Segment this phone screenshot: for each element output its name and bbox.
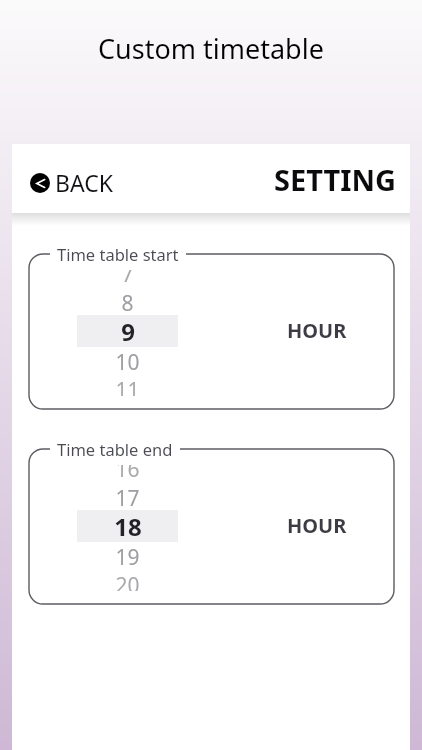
staticText: HOUR	[287, 512, 347, 539]
staticText: 10	[115, 348, 140, 376]
staticText: 20	[115, 571, 140, 591]
staticText: 19	[115, 543, 140, 571]
staticText: BACK	[55, 167, 113, 198]
button[interactable]	[77, 483, 178, 511]
button[interactable]	[77, 288, 178, 316]
staticText: Custom timetable	[98, 30, 324, 67]
staticText: Time table end	[57, 438, 173, 460]
staticText: 11	[115, 376, 140, 396]
staticText: HOUR	[287, 317, 347, 344]
staticText: 7	[121, 270, 134, 288]
other: Time table end	[77, 465, 178, 591]
button[interactable]	[77, 571, 178, 591]
staticText: 8	[121, 289, 134, 317]
button[interactable]	[77, 270, 178, 288]
button[interactable]	[77, 376, 178, 396]
button[interactable]	[77, 511, 178, 543]
button[interactable]: SETTING	[257, 150, 410, 209]
staticText: 9	[121, 315, 135, 343]
staticText: 16	[115, 465, 140, 483]
button[interactable]	[77, 465, 178, 483]
staticText: 18	[114, 510, 142, 538]
other: Time table start	[77, 270, 178, 396]
staticText: SETTING	[274, 160, 397, 199]
button[interactable]	[77, 348, 178, 376]
button[interactable]	[77, 316, 178, 348]
staticText: Time table start	[57, 243, 179, 265]
button[interactable]: Back	[12, 157, 131, 208]
staticText: 17	[115, 484, 140, 512]
button[interactable]	[77, 543, 178, 571]
